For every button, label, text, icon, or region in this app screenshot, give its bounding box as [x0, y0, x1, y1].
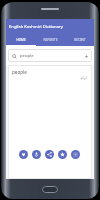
button[interactable]: HOME: [6, 33, 36, 46]
button[interactable]: RECENT: [65, 33, 94, 46]
staticText: HOME: [16, 38, 26, 42]
button[interactable]: people: [8, 49, 92, 62]
staticText: English Kashmiri Dictionary: [9, 24, 63, 30]
button[interactable]: Keyboard: [71, 150, 80, 159]
button[interactable]: Favorite: [19, 150, 28, 159]
button[interactable]: Pronounce: [32, 150, 41, 159]
button[interactable]: Clear search: [84, 54, 89, 59]
staticText: RECENT: [74, 38, 86, 42]
staticText: لوکھ: [80, 76, 87, 80]
staticText: FAVORITE: [43, 38, 58, 42]
staticText: people: [12, 69, 27, 75]
staticText: people: [20, 53, 34, 59]
button[interactable]: FAVORITE: [36, 33, 65, 46]
button[interactable]: Share: [45, 150, 54, 159]
button[interactable]: Rate: [58, 150, 67, 159]
